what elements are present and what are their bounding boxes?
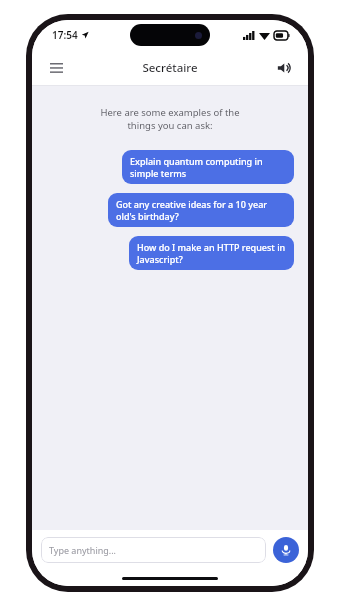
staticText: Secrétaire	[142, 60, 198, 76]
staticText: Type anything...	[49, 544, 117, 556]
button[interactable]: Sound	[270, 54, 298, 82]
button[interactable]: Voice input	[273, 537, 299, 563]
staticText: Got any creative ideas for a 10 year old…	[116, 198, 286, 222]
button[interactable]: Explain quantum computing in simple term…	[122, 150, 294, 184]
staticText: How do I make an HTTP request in Javascr…	[137, 241, 286, 265]
button[interactable]: Menu	[42, 54, 70, 82]
staticText: Explain quantum computing in simple term…	[130, 155, 286, 179]
staticText: Here are some examples of the things you…	[46, 106, 294, 132]
button[interactable]: Type anything...	[41, 537, 266, 563]
button[interactable]: Got any creative ideas for a 10 year old…	[108, 193, 294, 227]
button[interactable]: How do I make an HTTP request in Javascr…	[129, 236, 294, 270]
staticText: 17:54	[52, 28, 78, 42]
